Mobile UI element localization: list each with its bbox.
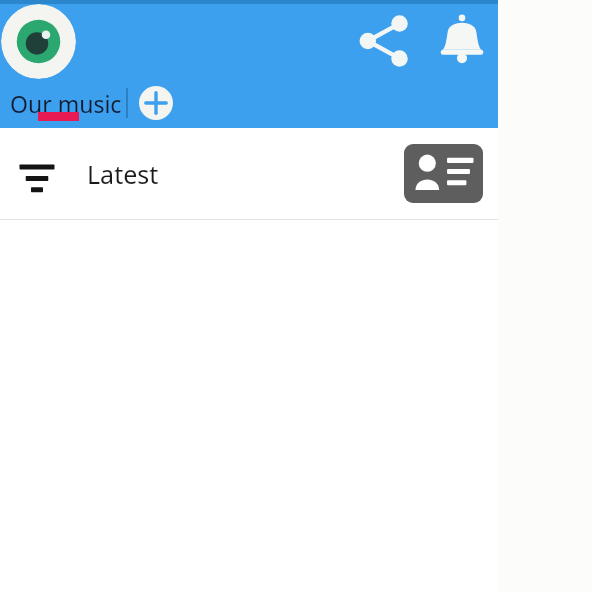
button[interactable]: Notifications	[432, 8, 492, 68]
button[interactable]: Our music	[10, 88, 122, 119]
button[interactable]: Contacts	[404, 144, 483, 203]
staticText: Latest	[87, 157, 159, 191]
button[interactable]: Profile	[1, 4, 76, 79]
button[interactable]: Add	[139, 86, 173, 120]
staticText: Our music	[10, 88, 122, 119]
button[interactable]: Share	[352, 8, 418, 74]
button[interactable]: Latest	[14, 128, 159, 219]
